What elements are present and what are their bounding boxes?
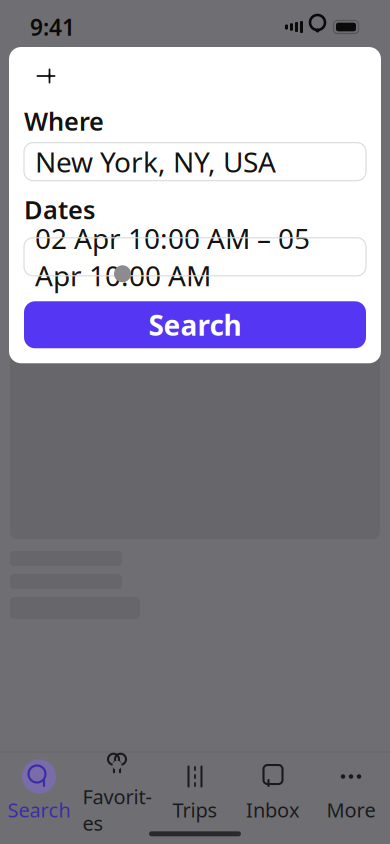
button[interactable]: Favorites xyxy=(78,761,156,823)
staticText: Trips xyxy=(172,796,217,823)
button[interactable]: Trips xyxy=(156,761,234,823)
staticText: 02 Apr 10:00 AM – 05 Apr 10:00 AM xyxy=(35,220,310,294)
button[interactable]: Inbox xyxy=(234,761,312,823)
button[interactable]: Back xyxy=(24,56,68,96)
button[interactable]: Search xyxy=(0,761,78,823)
staticText: Search xyxy=(148,306,241,343)
staticText: Favorites xyxy=(82,783,151,836)
staticText: 9:41 xyxy=(30,12,75,42)
staticText: More xyxy=(326,796,375,823)
staticText: Inbox xyxy=(246,796,300,823)
staticText: Where xyxy=(24,104,104,138)
staticText: Search xyxy=(7,796,70,823)
staticText: Dates xyxy=(24,193,95,226)
button[interactable]: More xyxy=(312,761,390,823)
button[interactable]: Search xyxy=(24,301,366,348)
staticText: New York, NY, USA xyxy=(35,143,276,180)
